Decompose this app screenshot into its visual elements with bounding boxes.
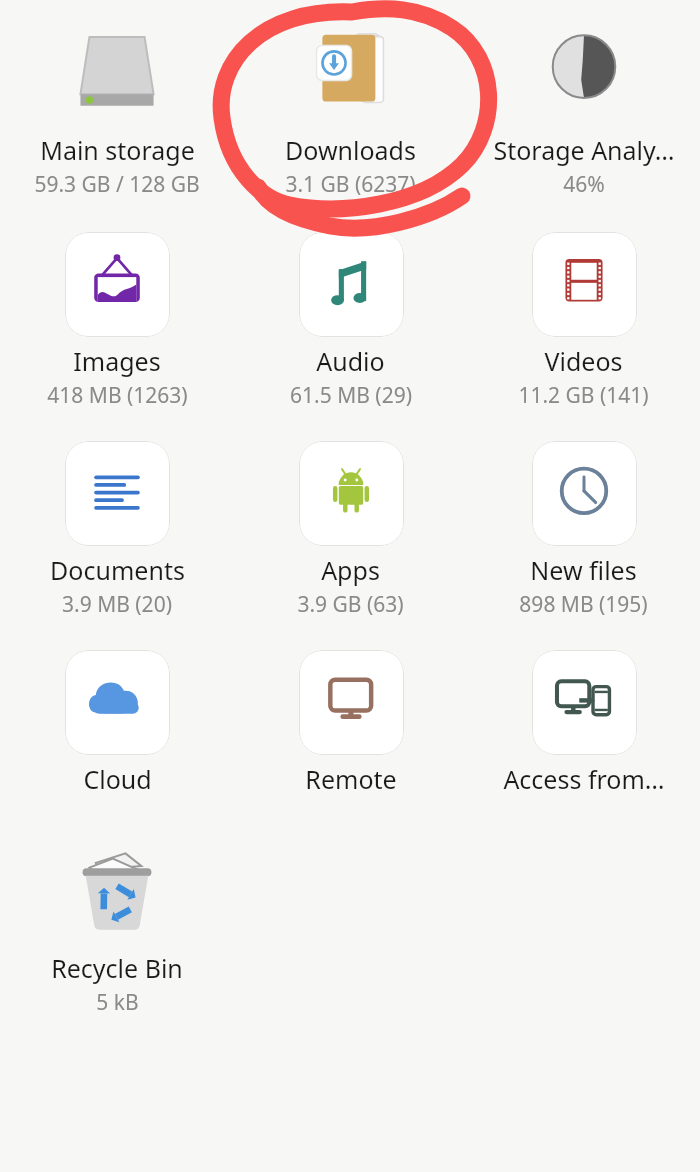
staticText: 5 kB (96, 988, 139, 1017)
staticText: 11.2 GB (141) (518, 381, 649, 410)
button[interactable]: Images (0, 223, 234, 410)
staticText: Recycle Bin (51, 951, 183, 985)
button[interactable]: Downloads (234, 12, 467, 199)
staticText: Main storage (40, 133, 195, 167)
staticText: New files (530, 553, 637, 587)
staticText: 3.9 MB (20) (62, 590, 172, 619)
button[interactable]: Apps (234, 432, 467, 619)
button[interactable]: Cloud (0, 641, 234, 796)
button[interactable]: Recycle Bin (0, 830, 234, 1017)
button[interactable]: Storage Analy… (467, 12, 700, 199)
staticText: Audio (316, 344, 385, 378)
staticText: Videos (544, 344, 623, 378)
staticText: 46% (563, 170, 605, 199)
button[interactable]: Main storage (0, 12, 234, 199)
staticText: Storage Analy… (493, 133, 675, 167)
button[interactable]: Access from… (467, 641, 700, 796)
staticText: Images (73, 344, 161, 378)
staticText: 418 MB (1263) (47, 381, 188, 410)
staticText: 59.3 GB / 128 GB (34, 170, 200, 199)
staticText: 61.5 MB (29) (290, 381, 412, 410)
button[interactable]: Remote (234, 641, 467, 796)
button[interactable]: Videos (467, 223, 700, 410)
staticText: Downloads (285, 133, 416, 167)
staticText: Cloud (83, 762, 152, 796)
button[interactable]: Audio (234, 223, 467, 410)
staticText: 3.9 GB (63) (297, 590, 404, 619)
staticText: 898 MB (195) (519, 590, 648, 619)
staticText: 3.1 GB (6237) (285, 170, 416, 199)
staticText: Apps (321, 553, 380, 587)
button[interactable]: Documents (0, 432, 234, 619)
staticText: Access from… (503, 762, 665, 796)
staticText: Remote (305, 762, 397, 796)
staticText: Documents (50, 553, 185, 587)
button[interactable]: New files (467, 432, 700, 619)
